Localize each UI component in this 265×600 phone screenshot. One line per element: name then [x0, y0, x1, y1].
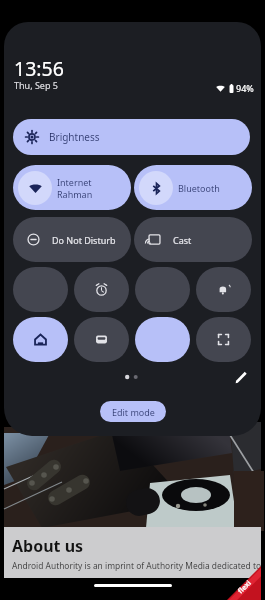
button[interactable]: Quick setting — [13, 267, 68, 312]
button[interactable]: Brightness — [13, 119, 250, 155]
button[interactable]: Quick setting — [135, 317, 190, 362]
button[interactable]: Quick setting — [135, 267, 190, 312]
staticText: Edit mode — [112, 406, 155, 418]
staticText: Rahman — [57, 188, 93, 200]
staticText: Android Authority is an imprint of Autho… — [12, 560, 262, 571]
button[interactable]: Do Not Disturb — [13, 217, 131, 262]
button[interactable]: Quick setting — [74, 317, 129, 362]
button[interactable]: Quick setting — [74, 267, 129, 312]
staticText: Do Not Disturb — [52, 234, 116, 246]
staticText: 13:56 — [14, 55, 64, 82]
button[interactable]: Edit — [230, 366, 252, 388]
button[interactable]: Edit mode — [100, 401, 166, 422]
button[interactable]: Quick setting — [196, 317, 251, 362]
staticText: Cast — [173, 234, 192, 246]
button[interactable]: Quick setting — [13, 317, 68, 362]
button[interactable]: Internet — [13, 165, 131, 210]
staticText: Brightness — [49, 130, 100, 144]
staticText: Internet — [57, 176, 92, 188]
button[interactable]: Cast — [134, 217, 252, 262]
staticText: About us — [12, 535, 84, 557]
staticText: Thu, Sep 5 — [14, 79, 58, 91]
button[interactable]: Bluetooth — [134, 165, 252, 210]
staticText: 94% — [236, 82, 254, 94]
staticText: Bluetooth — [178, 182, 220, 194]
button[interactable]: Quick setting — [196, 267, 251, 312]
staticText: flexi — [236, 578, 254, 596]
